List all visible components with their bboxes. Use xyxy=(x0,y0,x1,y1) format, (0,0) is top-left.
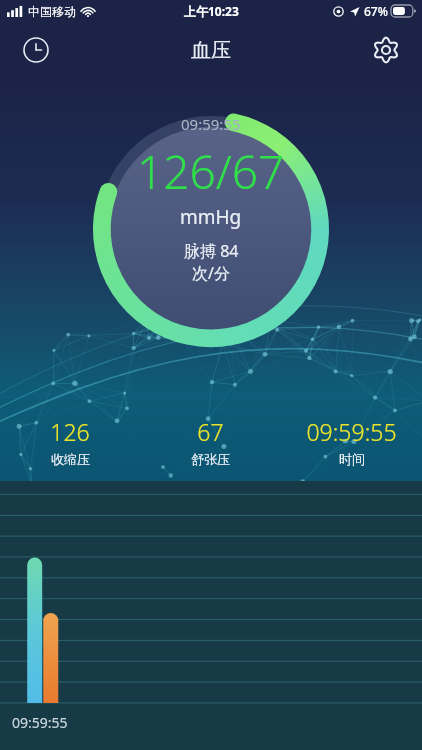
staticText: 09:59:55 xyxy=(12,713,68,732)
button[interactable]: History xyxy=(14,28,58,72)
button[interactable]: Settings xyxy=(364,28,408,72)
staticText: 09:59:55 xyxy=(181,114,241,134)
staticText: 09:59:55 xyxy=(306,416,397,447)
staticText: 67 xyxy=(197,416,224,447)
staticText: 脉搏 84 xyxy=(184,240,239,262)
staticText: 中国移动 xyxy=(28,4,76,19)
button[interactable]: 67 xyxy=(140,416,281,467)
staticText: mmHg xyxy=(180,204,242,230)
staticText: 次/分 xyxy=(192,262,230,284)
staticText: 时间 xyxy=(339,451,365,467)
staticText: 126 xyxy=(50,416,90,447)
staticText: 67% xyxy=(364,3,388,19)
staticText: 收缩压 xyxy=(51,451,90,467)
staticText: 126/67 xyxy=(137,140,285,203)
button[interactable]: 126 xyxy=(0,416,140,467)
staticText: 舒张压 xyxy=(191,451,230,467)
staticText: 上午10:23 xyxy=(184,3,239,19)
button[interactable]: 09:59:55 xyxy=(281,416,422,467)
staticText: 血压 xyxy=(191,38,231,63)
